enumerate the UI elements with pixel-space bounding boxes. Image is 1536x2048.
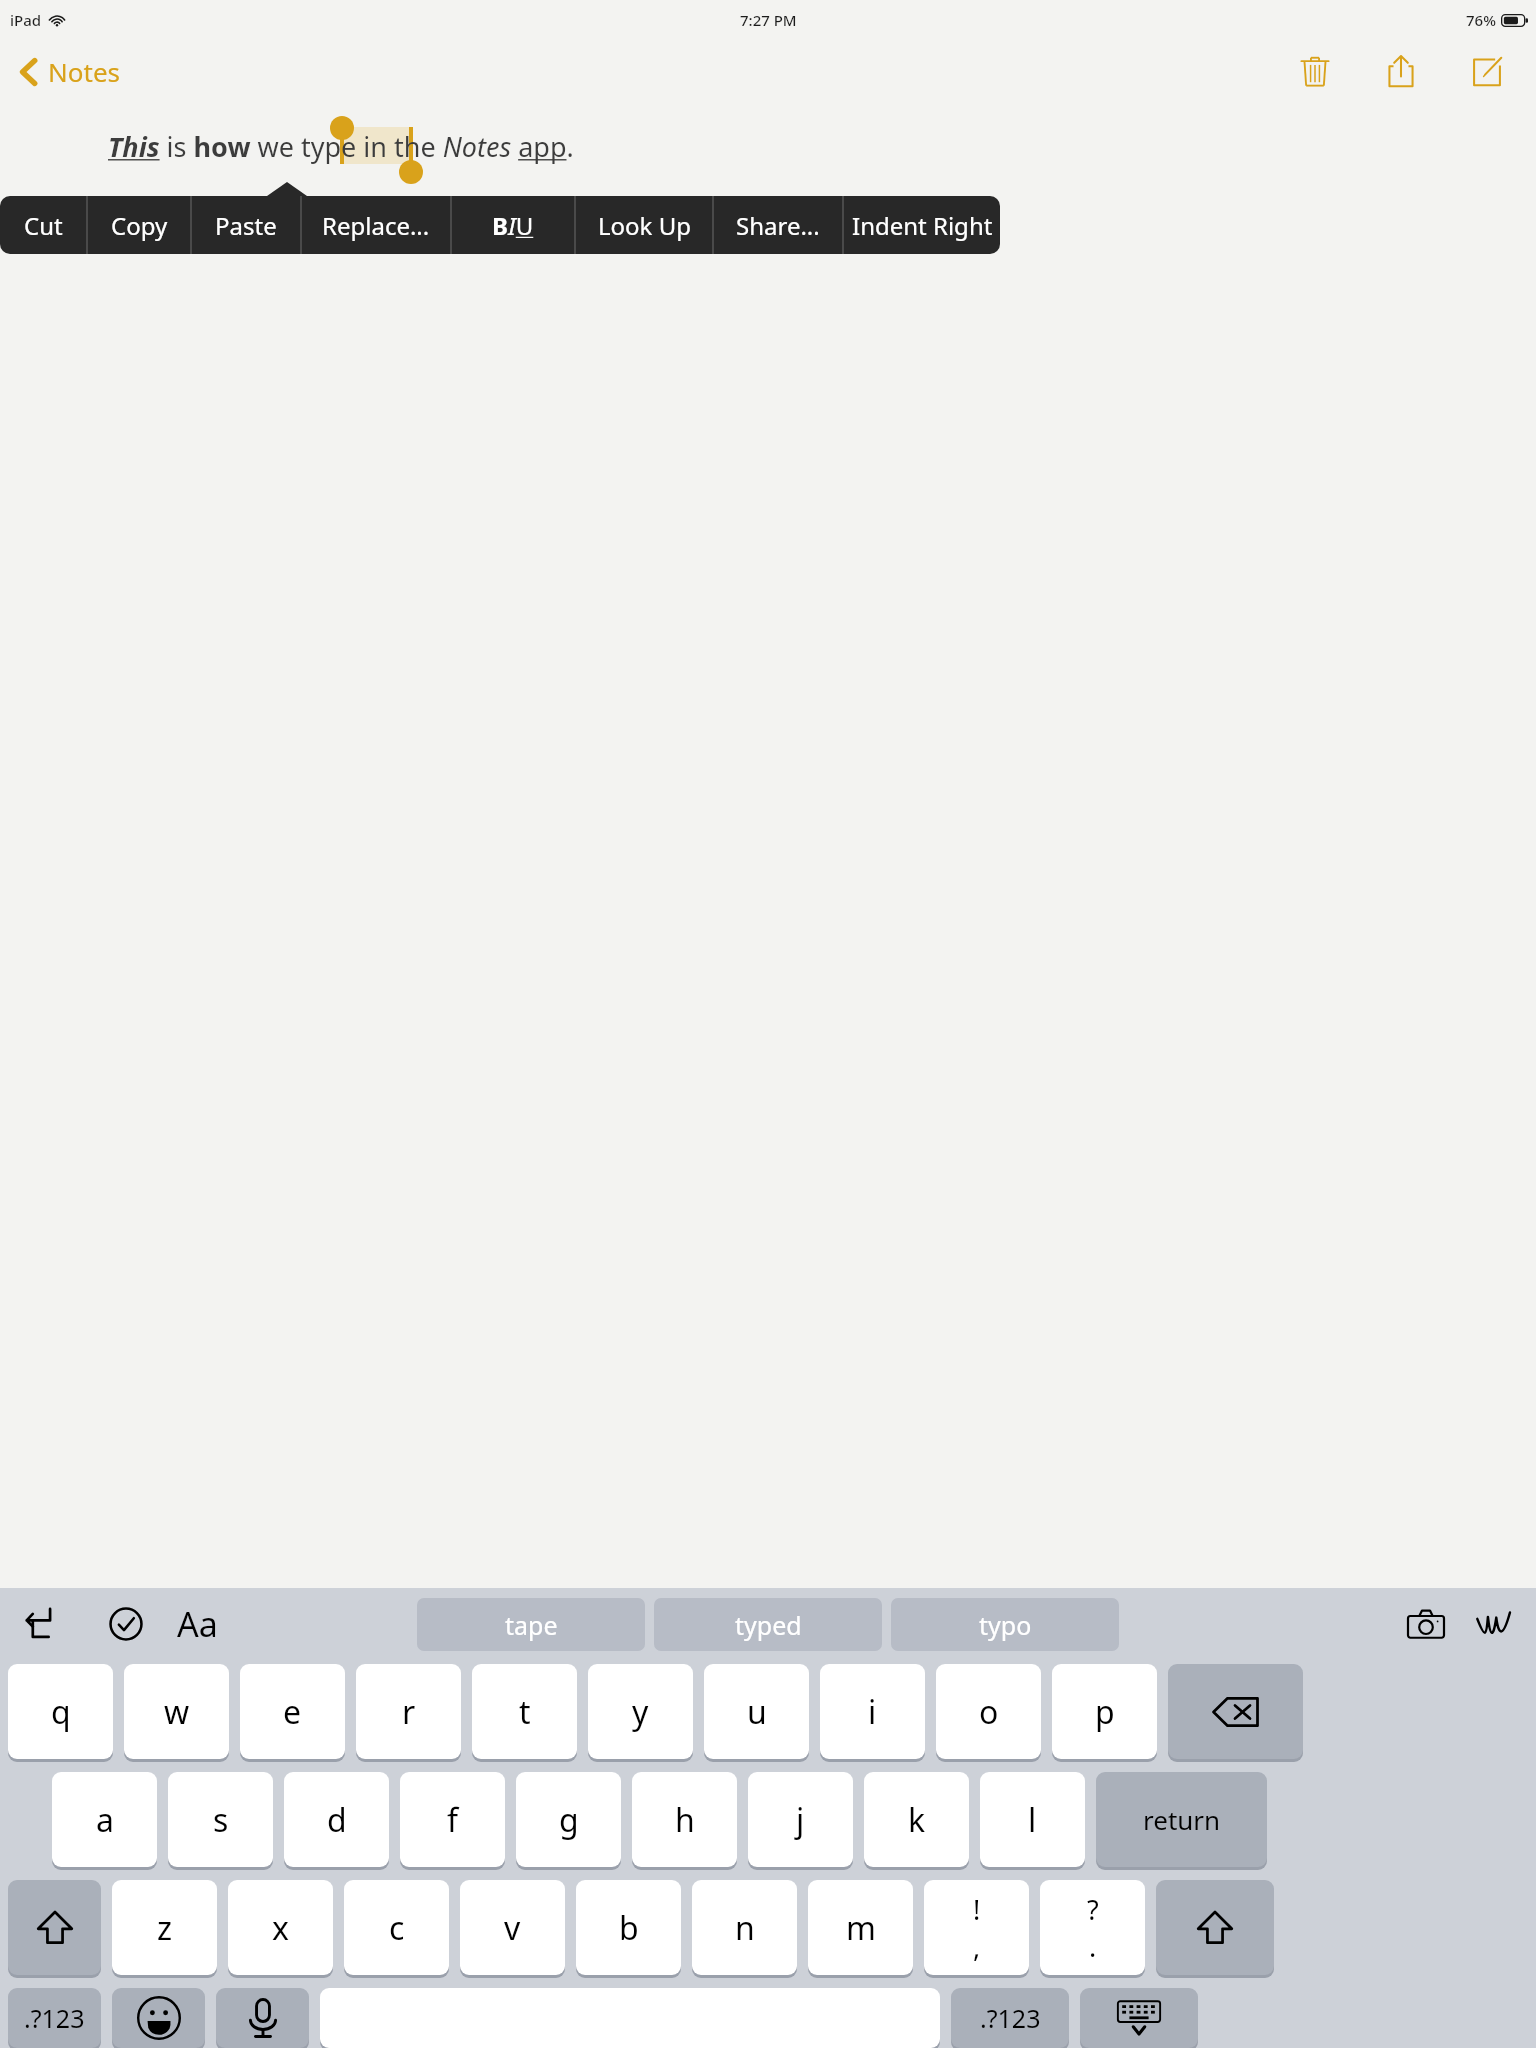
staticText: v [504,1906,521,1950]
staticText: m [846,1906,876,1950]
button[interactable]: Shift [1156,1880,1274,1978]
button[interactable]: Camera [1398,1596,1454,1652]
button[interactable]: Notes [14,48,126,95]
button[interactable]: a [52,1772,157,1870]
staticText: n [735,1906,755,1950]
staticText: i [868,1690,877,1734]
button[interactable]: g [516,1772,621,1870]
button[interactable]: j [748,1772,853,1870]
staticText: typo [979,1608,1032,1642]
button[interactable]: Copy [88,196,190,254]
button[interactable]: w [124,1664,229,1762]
staticText: .?123 [980,2001,1041,2035]
staticText: Paste [215,209,277,242]
button[interactable]: c [344,1880,449,1978]
staticText: l [1028,1798,1037,1842]
staticText: e [283,1690,302,1734]
staticText: . [1089,1928,1097,1965]
button[interactable]: typed [654,1598,882,1651]
button[interactable]: f [400,1772,505,1870]
staticText: tape [505,1608,558,1642]
staticText: Indent Right [852,209,993,242]
staticText: g [559,1798,579,1842]
staticText: ? [1087,1891,1099,1928]
staticText: Look Up [598,209,691,242]
button[interactable]: Undo [12,1596,68,1652]
button[interactable]: d [284,1772,389,1870]
button[interactable]: Shift [8,1880,101,1978]
button[interactable]: ! [924,1880,1029,1978]
button[interactable]: l [980,1772,1085,1870]
button[interactable]: h [632,1772,737,1870]
button[interactable]: .?123 [8,1988,101,2048]
button[interactable]: Share [1374,44,1428,98]
staticText: Notes [48,54,120,89]
button[interactable]: t [472,1664,577,1762]
button[interactable]: s [168,1772,273,1870]
staticText: c [389,1906,405,1950]
button[interactable]: Replace... [302,196,450,254]
button[interactable]: BIU [452,196,574,254]
staticText: Cut [24,209,63,242]
staticText: h [675,1798,695,1842]
staticText: typed [735,1608,802,1642]
button[interactable]: New Note [1460,44,1514,98]
button[interactable]: Hide keyboard [1080,1988,1198,2048]
button[interactable]: Dictation [216,1988,309,2048]
staticText: y [632,1690,649,1734]
button[interactable]: q [8,1664,113,1762]
staticText: Replace... [322,209,430,242]
staticText: Copy [111,209,168,242]
button[interactable]: n [692,1880,797,1978]
staticText: b [619,1906,639,1950]
staticText: 7:27 PM [740,10,797,30]
button[interactable]: p [1052,1664,1157,1762]
button[interactable]: Cut [0,196,86,254]
button[interactable]: u [704,1664,809,1762]
staticText: .?123 [24,2001,85,2035]
button[interactable]: y [588,1664,693,1762]
button[interactable]: o [936,1664,1041,1762]
staticText: f [447,1798,459,1842]
staticText: t [519,1690,531,1734]
button[interactable]: ? [1040,1880,1145,1978]
staticText: This is how we type in the Notes app. [108,128,574,165]
staticText: z [157,1906,173,1950]
button[interactable]: x [228,1880,333,1978]
staticText: u [747,1690,767,1734]
staticText: return [1143,1802,1221,1837]
button[interactable]: typo [891,1598,1119,1651]
button[interactable]: Emoji [112,1988,205,2048]
button[interactable]: e [240,1664,345,1762]
button[interactable]: Backspace [1168,1664,1303,1762]
staticText: d [327,1798,347,1842]
staticText: x [272,1906,289,1950]
button[interactable]: z [112,1880,217,1978]
button[interactable]: return [1096,1772,1267,1870]
staticText: o [979,1690,999,1734]
button[interactable]: i [820,1664,925,1762]
button[interactable]: Paste [192,196,300,254]
staticText: k [908,1798,926,1842]
button[interactable]: v [460,1880,565,1978]
button[interactable]: m [808,1880,913,1978]
button[interactable]: Handwriting [1466,1596,1522,1652]
button[interactable]: .?123 [951,1988,1069,2048]
staticText: p [1095,1690,1115,1734]
staticText: w [164,1690,190,1734]
staticText: s [213,1798,229,1842]
button[interactable]: Indent Right [844,196,1000,254]
button[interactable]: Share... [714,196,842,254]
button[interactable]: r [356,1664,461,1762]
button[interactable]: Delete [1288,44,1342,98]
staticText: r [402,1690,416,1734]
button[interactable]: Space [320,1988,940,2048]
button[interactable]: tape [417,1598,645,1651]
button[interactable]: Text format [168,1595,226,1653]
staticText: q [51,1690,71,1734]
button[interactable]: k [864,1772,969,1870]
button[interactable]: Look Up [576,196,712,254]
button[interactable]: b [576,1880,681,1978]
staticText: , [973,1928,981,1965]
button[interactable]: Checklist [98,1596,154,1652]
